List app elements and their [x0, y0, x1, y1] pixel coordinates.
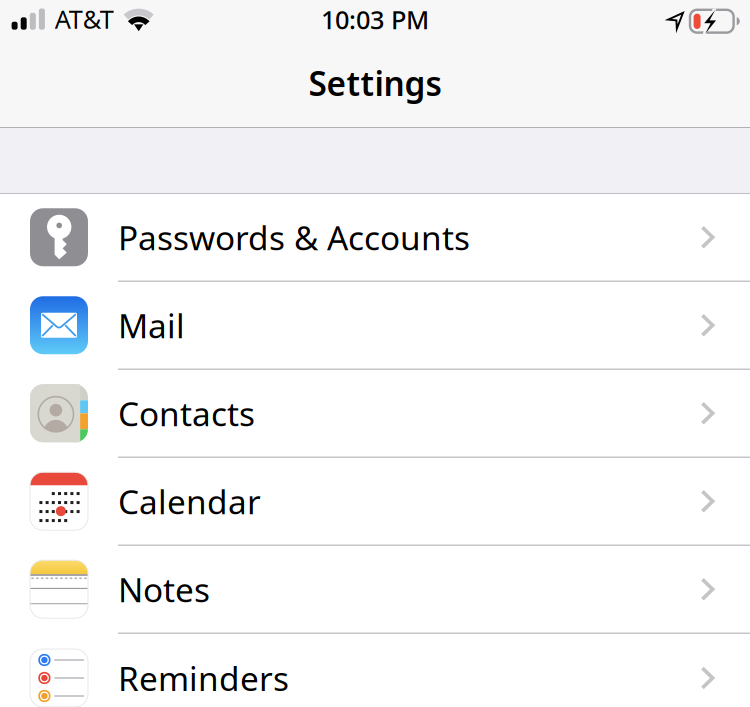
button[interactable]: Mail: [0, 282, 750, 370]
staticText: Calendar: [118, 479, 261, 523]
staticText: Notes: [118, 567, 210, 611]
button[interactable]: Notes: [0, 546, 750, 634]
staticText: Mail: [118, 303, 185, 347]
button[interactable]: Calendar: [0, 458, 750, 546]
button[interactable]: Reminders: [0, 634, 750, 707]
staticText: Reminders: [118, 656, 289, 700]
staticText: Settings: [308, 61, 441, 105]
staticText: Contacts: [118, 391, 255, 435]
button[interactable]: Passwords & Accounts: [0, 194, 750, 282]
staticText: Passwords & Accounts: [118, 215, 470, 259]
staticText: AT&T: [55, 2, 114, 36]
button[interactable]: Contacts: [0, 370, 750, 458]
staticText: 10:03 PM: [321, 3, 429, 36]
